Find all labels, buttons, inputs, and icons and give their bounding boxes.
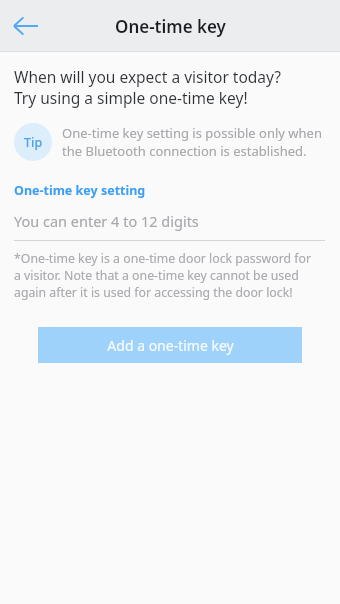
staticText: Add a one-time key bbox=[107, 336, 234, 355]
staticText: One-time key setting bbox=[14, 182, 146, 199]
staticText: When will you expect a visitor today? bbox=[14, 66, 281, 87]
staticText: Try using a simple one-time key! bbox=[14, 87, 248, 108]
staticText: again after it is used for accessing the… bbox=[14, 284, 293, 301]
staticText: Tip bbox=[24, 134, 43, 151]
staticText: *One-time key is a one-time door lock pa… bbox=[14, 250, 312, 267]
staticText: a visitor. Note that a one-time key cann… bbox=[14, 267, 299, 284]
staticText: One-time key setting is possible only wh… bbox=[62, 124, 322, 142]
staticText: One-time key bbox=[115, 15, 226, 38]
button[interactable]: Back bbox=[2, 2, 50, 50]
staticText: You can enter 4 to 12 digits bbox=[14, 211, 199, 231]
button[interactable]: You can enter 4 to 12 digits bbox=[14, 211, 325, 241]
staticText: the Bluetooth connection is established. bbox=[62, 142, 307, 160]
button[interactable]: Add a one-time key bbox=[38, 327, 302, 363]
